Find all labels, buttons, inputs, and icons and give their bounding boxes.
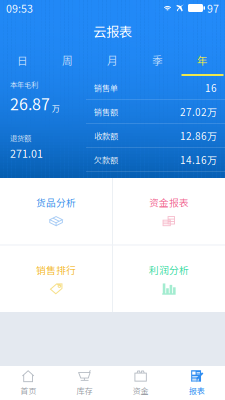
button[interactable]: 资金报表 [113,178,225,245]
staticText: 退货额 [10,133,31,143]
staticText: 云报表 [93,21,132,41]
staticText: 14.16万 [180,152,217,167]
button[interactable]: 资金 [112,366,169,400]
button[interactable]: 利润分析 [113,245,225,312]
button[interactable]: 销售排行 [0,245,112,312]
button[interactable]: 月 [90,46,135,76]
staticText: 万 [52,102,60,114]
button[interactable]: 日 [0,46,45,76]
staticText: 库存 [76,385,92,396]
staticText: 26.87 [10,92,50,115]
staticText: 欠款额 [94,154,118,165]
staticText: 09:53 [6,0,33,16]
button[interactable]: 周 [45,46,90,76]
staticText: 季 [152,52,163,68]
staticText: 27.02万 [180,104,217,119]
staticText: 资金报表 [149,195,189,209]
staticText: 利润分析 [149,263,189,277]
button[interactable]: 季 [135,46,180,76]
staticText: 本年毛利 [10,79,38,90]
staticText: 日 [17,52,28,68]
staticText: 首页 [20,385,36,396]
staticText: 16 [205,80,217,95]
staticText: 资金 [133,385,149,396]
button[interactable]: 年 [180,46,225,76]
button[interactable]: 库存 [56,366,112,400]
button[interactable]: 首页 [0,366,56,400]
staticText: 收款额 [94,130,118,141]
staticText: 销售额 [94,106,118,117]
staticText: 销售单 [94,82,118,93]
staticText: 271.01 [10,145,43,161]
button[interactable]: 报表 [169,366,225,400]
staticText: 货品分析 [36,195,76,209]
staticText: 97 [207,0,219,16]
staticText: 年 [197,52,208,68]
staticText: 月 [107,52,118,68]
staticText: 报表 [189,385,205,396]
staticText: 周 [62,52,73,68]
staticText: 12.86万 [180,128,217,143]
button[interactable]: 货品分析 [0,178,112,245]
staticText: 销售排行 [36,263,76,277]
